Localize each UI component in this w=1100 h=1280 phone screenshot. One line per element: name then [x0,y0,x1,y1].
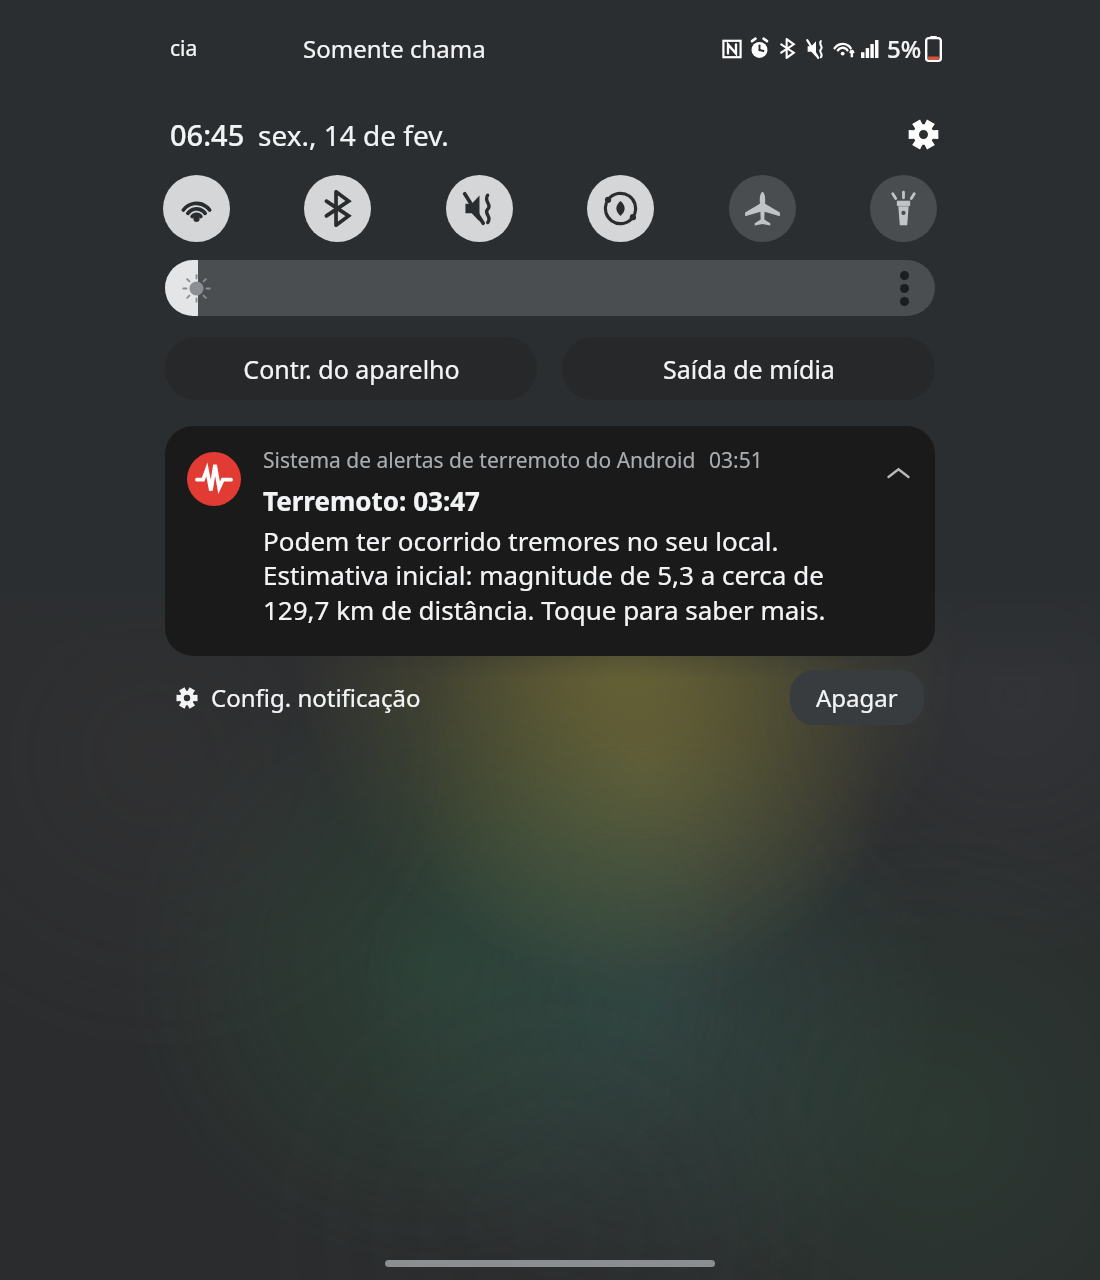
button[interactable]: Bluetooth [304,175,371,242]
staticText: Apagar [816,681,898,714]
button[interactable]: Saída de mídia [562,337,935,400]
staticText: Sistema de alertas de terremoto do Andro… [263,446,696,475]
staticText: 03:51 [709,446,763,475]
staticText: Podem ter ocorrido tremores no seu local… [263,523,877,628]
button[interactable]: Apagar [790,670,924,725]
button[interactable]: Config. notificação [176,681,421,714]
staticText: cia [170,34,198,63]
staticText: 5% [887,32,922,65]
button[interactable]: Sistema de alertas de terremoto do Andro… [165,426,935,656]
staticText: Contr. do aparelho [243,352,460,386]
staticText: Config. notificação [211,681,421,714]
staticText: Terremoto: 03:47 [263,483,480,518]
staticText: Somente chama [303,32,486,65]
button[interactable]: Collapse [877,452,919,494]
staticText: 06:45 [170,115,245,154]
button[interactable]: Contr. do aparelho [165,337,537,400]
button[interactable]: Wi-Fi [163,175,230,242]
button[interactable]: Brightness [165,260,935,316]
button[interactable]: Flashlight [870,175,937,242]
staticText: sex., 14 de fev. [258,116,449,154]
button[interactable]: Airplane mode [729,175,796,242]
staticText: Saída de mídia [663,352,835,386]
button[interactable]: Vibrate [446,175,513,242]
button[interactable]: Auto rotate [587,175,654,242]
button[interactable]: Settings [899,110,947,158]
